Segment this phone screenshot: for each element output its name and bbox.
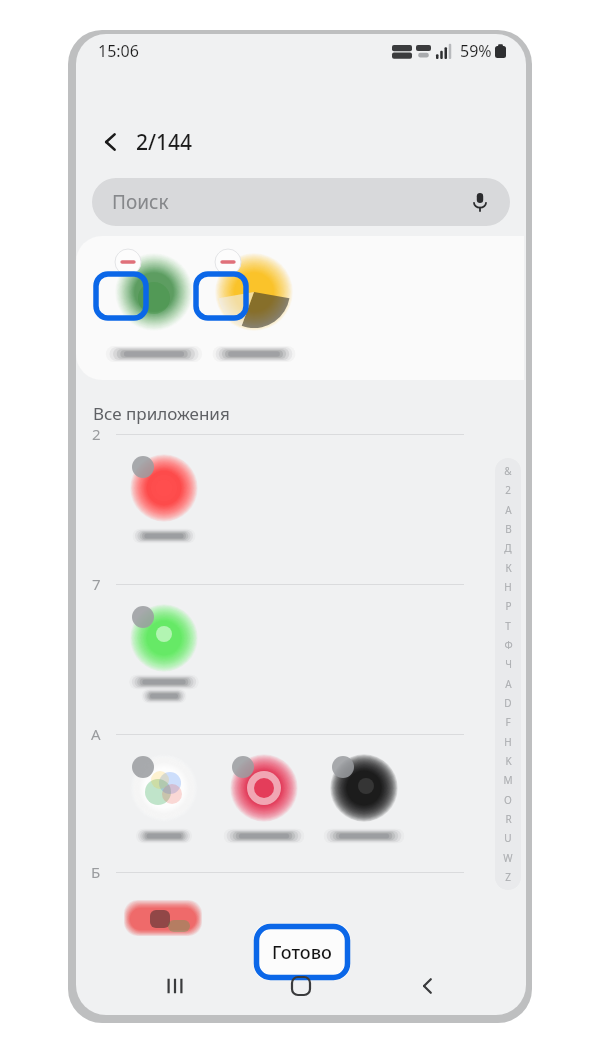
staticText: Ф	[504, 638, 513, 652]
staticText: W	[503, 851, 513, 865]
staticText: Все приложения	[93, 402, 230, 425]
button[interactable]	[124, 452, 204, 548]
staticText: 15:06	[98, 40, 139, 62]
staticText: U	[504, 831, 512, 845]
staticText: 2/144	[136, 128, 193, 157]
staticText: 2	[92, 424, 101, 444]
staticText: Скрытые приложения	[93, 238, 264, 260]
button[interactable]	[124, 890, 204, 950]
button[interactable]	[124, 752, 204, 848]
button[interactable]: Recents	[147, 958, 203, 1014]
staticText: Н	[504, 580, 512, 594]
button[interactable]: Back	[400, 958, 456, 1014]
button[interactable]: Home	[273, 958, 329, 1014]
staticText: 59%	[460, 40, 492, 62]
button[interactable]: Alphabet index	[495, 458, 521, 890]
staticText: H	[504, 735, 512, 749]
staticText: R	[505, 812, 512, 826]
button[interactable]	[224, 752, 304, 848]
button[interactable]: Поиск	[92, 178, 510, 226]
staticText: F	[505, 715, 511, 729]
staticText: А	[505, 503, 512, 517]
button[interactable]: Готово	[254, 924, 350, 980]
staticText: Б	[91, 862, 101, 882]
staticText: Готово	[272, 940, 332, 965]
staticText: M	[503, 773, 513, 787]
button[interactable]	[124, 602, 204, 706]
staticText: A	[505, 677, 512, 691]
staticText: А	[91, 724, 101, 744]
staticText: Ч	[505, 657, 512, 671]
staticText: К	[505, 561, 512, 575]
staticText: 7	[92, 574, 101, 594]
staticText: Р	[505, 599, 512, 613]
staticText: Z	[505, 870, 511, 884]
staticText: Т	[505, 619, 511, 633]
staticText: 2	[505, 483, 511, 497]
staticText: D	[504, 696, 512, 710]
staticText: O	[504, 793, 512, 807]
staticText: Поиск	[112, 189, 169, 215]
staticText: &	[504, 464, 512, 478]
button[interactable]	[324, 752, 404, 848]
staticText: В	[505, 522, 512, 536]
staticText: K	[505, 754, 512, 768]
button[interactable]: Back	[92, 123, 130, 161]
button[interactable]: Voice search	[464, 186, 496, 218]
staticText: Д	[504, 541, 512, 555]
